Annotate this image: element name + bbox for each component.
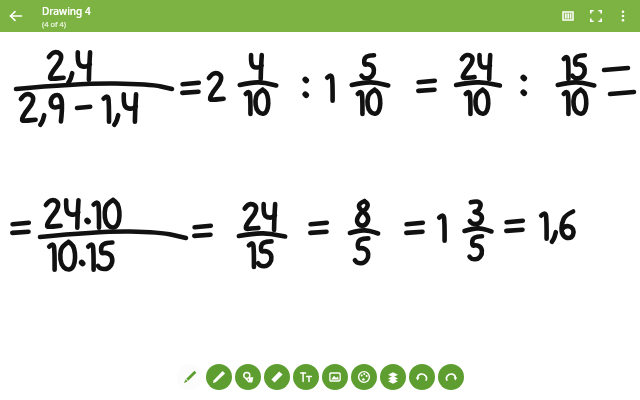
button[interactable]: Undo xyxy=(409,364,435,390)
button[interactable]: Insert image xyxy=(322,364,348,390)
button[interactable]: More options xyxy=(610,3,636,29)
button[interactable]: Layers xyxy=(380,364,406,390)
button[interactable]: Eraser xyxy=(264,364,290,390)
button[interactable]: Pages xyxy=(554,2,582,30)
staticText: (4 of 4) xyxy=(42,19,67,29)
button[interactable]: Pen xyxy=(206,364,232,390)
button[interactable]: Text xyxy=(293,364,319,390)
button[interactable]: Back xyxy=(0,0,32,32)
button[interactable]: Colour xyxy=(351,364,377,390)
staticText: Drawing 4 xyxy=(42,4,91,18)
button[interactable]: Fill xyxy=(235,364,261,390)
button[interactable]: Redo xyxy=(438,364,464,390)
button[interactable]: Brush xyxy=(177,364,203,390)
button[interactable]: Fullscreen xyxy=(582,2,610,30)
